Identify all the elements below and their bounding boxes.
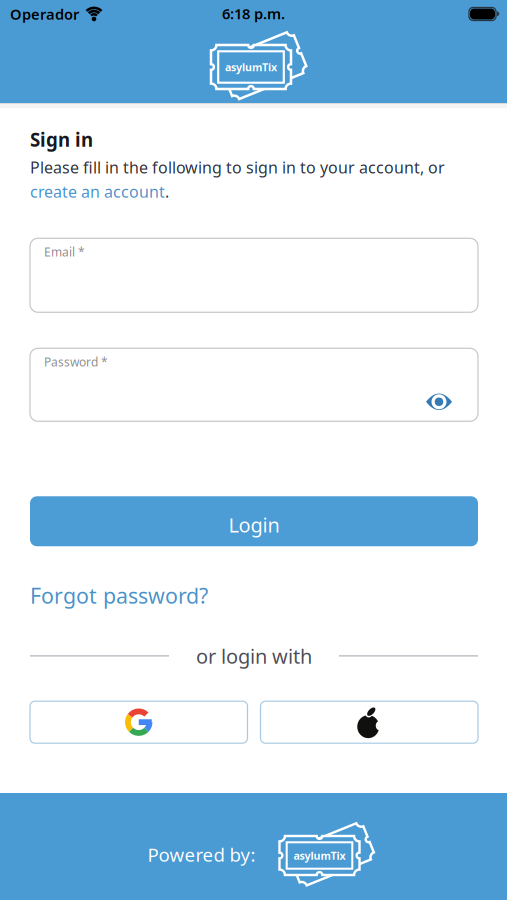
button[interactable]: create an account xyxy=(30,181,165,202)
button[interactable]: Login xyxy=(30,496,478,546)
staticText: Email * xyxy=(44,244,85,260)
staticText: Operador xyxy=(10,4,79,24)
staticText: asylumTix xyxy=(225,60,277,74)
staticText: create an account xyxy=(30,181,165,202)
button[interactable]: Email * xyxy=(30,238,478,312)
button[interactable]: Show password xyxy=(426,393,452,411)
staticText: Password * xyxy=(44,354,108,370)
button[interactable]: Login with Google xyxy=(30,701,247,743)
staticText: asylumTix xyxy=(293,848,345,863)
staticText: Sign in xyxy=(30,127,93,152)
staticText: . xyxy=(165,181,169,202)
staticText: Login xyxy=(228,511,279,538)
staticText: or login with xyxy=(196,643,312,669)
staticText: Powered by: xyxy=(147,842,255,867)
staticText: Please fill in the following to sign in … xyxy=(30,157,445,178)
staticText: Forgot password? xyxy=(30,581,208,610)
staticText: 6:18 p.m. xyxy=(222,4,285,23)
button[interactable]: Password * xyxy=(30,348,478,421)
button[interactable]: Login with Apple xyxy=(260,701,478,743)
button[interactable]: Forgot password? xyxy=(30,581,208,610)
